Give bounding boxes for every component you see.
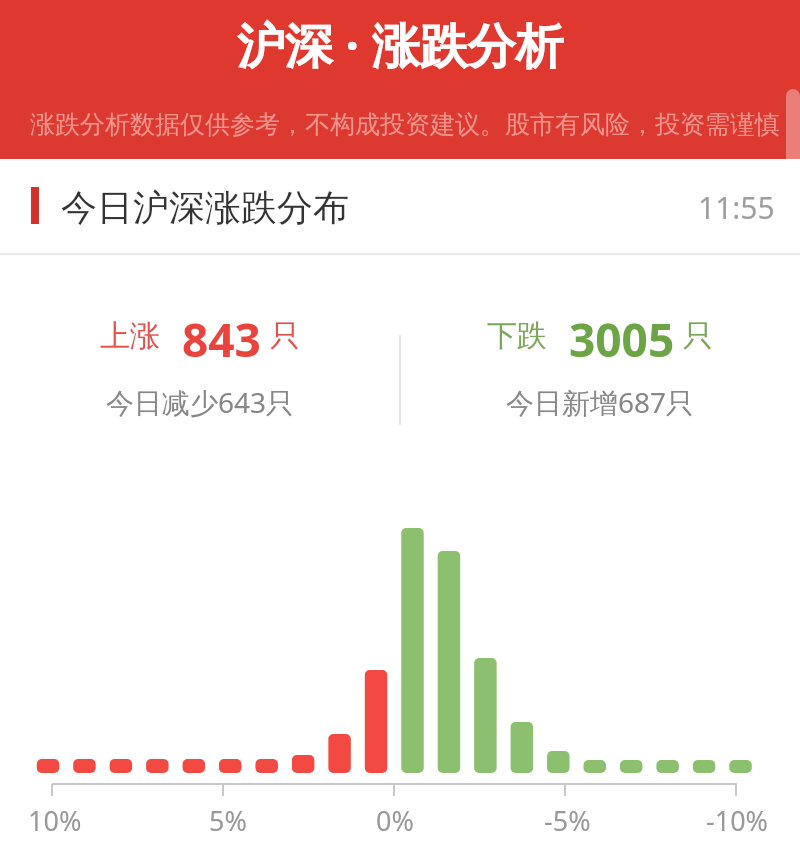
staticText: 沪深 · 涨跌分析 — [237, 12, 564, 78]
staticText: 3005 — [569, 308, 675, 363]
staticText: 只 — [270, 317, 300, 355]
staticText: 今日新增687只 — [506, 383, 695, 419]
staticText: 5% — [209, 802, 247, 838]
staticText: 今日减少643只 — [106, 383, 295, 419]
staticText: 今日沪深涨跌分布 — [61, 185, 349, 230]
staticText: 下跌 — [487, 317, 547, 355]
staticText: 涨跌分析数据仅供参考，不构成投资建议。股市有风险，投资需谨慎 — [30, 109, 780, 140]
staticText: 只 — [683, 317, 713, 355]
staticText: 843 — [182, 308, 261, 363]
staticText: -5% — [544, 802, 591, 838]
staticText: 0% — [376, 802, 414, 838]
staticText: -10% — [706, 802, 769, 838]
staticText: 10% — [28, 802, 82, 838]
staticText: 上涨 — [100, 317, 160, 355]
button[interactable]: 沪深 · 涨跌分析 — [0, 0, 800, 89]
staticText: 11:55 — [698, 187, 775, 228]
button[interactable]: 今日沪深涨跌分布 — [0, 159, 800, 255]
